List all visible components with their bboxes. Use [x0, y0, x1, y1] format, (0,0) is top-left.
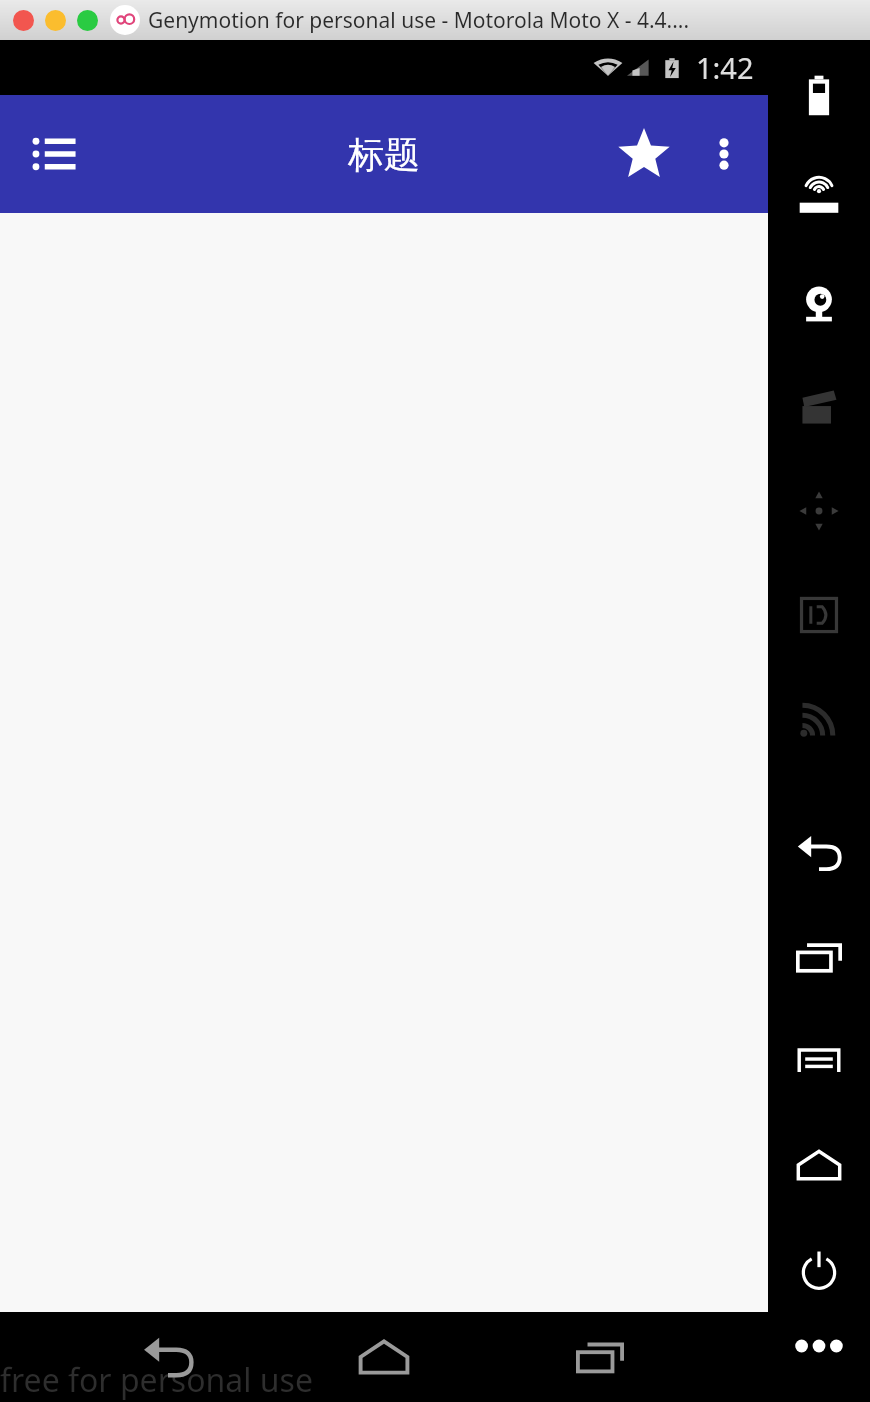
button[interactable]: Back: [120, 1312, 216, 1402]
button[interactable]: Accelerometer: [782, 474, 856, 548]
button[interactable]: Recent apps: [552, 1312, 648, 1402]
staticText: Genymotion for personal use - Motorola M…: [148, 6, 690, 35]
button[interactable]: Network: [782, 682, 856, 756]
staticText: 1:42: [696, 48, 754, 87]
button[interactable]: Identifiers: [782, 578, 856, 652]
button[interactable]: Favorite: [602, 112, 686, 196]
button[interactable]: More options: [686, 116, 762, 192]
button[interactable]: Screen record: [782, 370, 856, 444]
button[interactable]: Back: [782, 816, 856, 890]
button[interactable]: Home: [336, 1312, 432, 1402]
button[interactable]: Power: [782, 1232, 856, 1306]
staticText: 标题: [348, 132, 420, 177]
button[interactable]: More: [787, 1314, 851, 1378]
button[interactable]: GPS: [782, 162, 856, 236]
button[interactable]: Recent apps: [782, 920, 856, 994]
button[interactable]: Navigation menu: [16, 116, 92, 192]
staticText: free for personal use: [0, 1358, 313, 1402]
button[interactable]: Battery: [782, 58, 856, 132]
button[interactable]: Menu: [782, 1024, 856, 1098]
button[interactable]: Home: [782, 1128, 856, 1202]
button[interactable]: Camera: [782, 266, 856, 340]
